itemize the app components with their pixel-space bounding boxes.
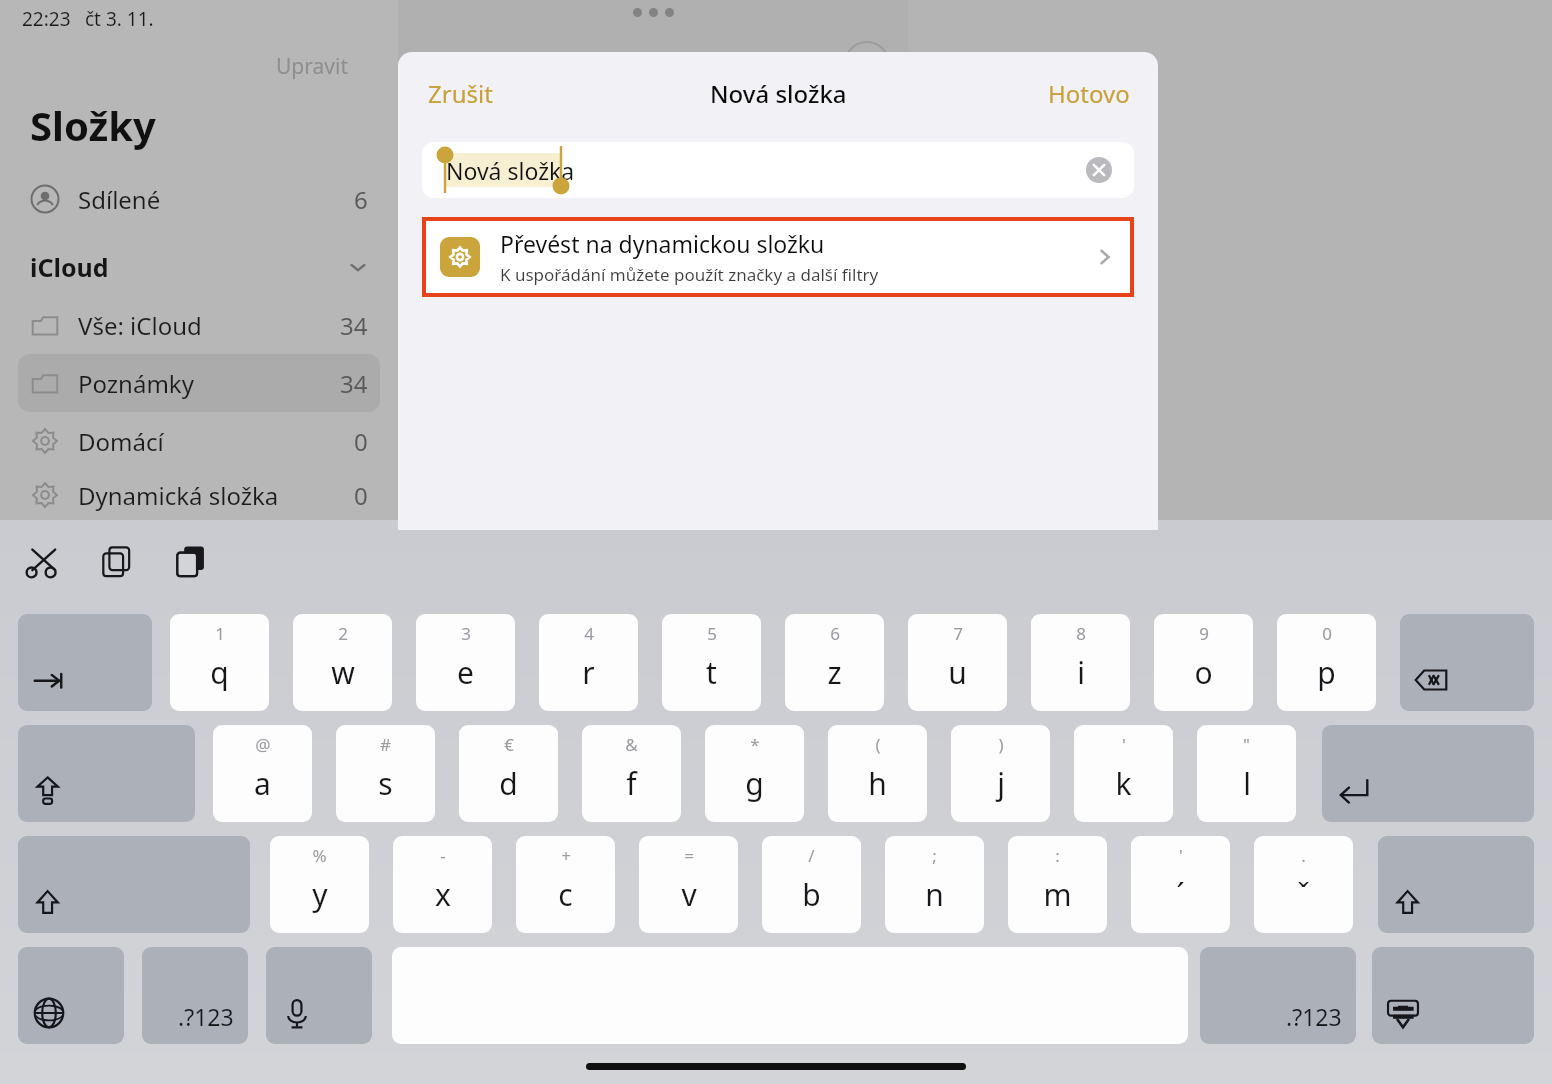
button[interactable]: ) xyxy=(951,725,1050,822)
staticText: iCloud xyxy=(30,250,109,284)
button[interactable]: Upravit xyxy=(276,52,348,81)
button[interactable]: Vše: iCloud xyxy=(18,296,380,354)
staticText: 8 xyxy=(1076,622,1086,645)
staticText: ) xyxy=(998,733,1004,756)
button[interactable]: Key xyxy=(1378,836,1534,933)
button[interactable]: Key xyxy=(18,836,250,933)
button[interactable]: : xyxy=(1008,836,1107,933)
button[interactable]: 4 xyxy=(539,614,638,711)
button[interactable]: / xyxy=(762,836,861,933)
button[interactable]: # xyxy=(336,725,435,822)
staticText: 7 xyxy=(953,622,963,645)
button[interactable]: Key xyxy=(18,725,195,822)
button[interactable]: ; xyxy=(885,836,984,933)
staticText: .?123 xyxy=(1286,1001,1342,1032)
staticText: v xyxy=(681,874,697,915)
button[interactable]: Key xyxy=(266,947,372,1044)
button[interactable]: * xyxy=(705,725,804,822)
staticText: - xyxy=(440,844,446,867)
button[interactable]: € xyxy=(459,725,558,822)
staticText: 34 xyxy=(340,367,368,400)
button[interactable]: Převést na dynamickou složku xyxy=(426,221,1130,293)
button[interactable]: Key xyxy=(1400,614,1534,711)
button[interactable]: 7 xyxy=(908,614,1007,711)
button[interactable]: Paste xyxy=(172,542,210,580)
button[interactable]: 0 xyxy=(1277,614,1376,711)
staticText: s xyxy=(378,763,393,804)
staticText: p xyxy=(1317,652,1336,693)
button[interactable]: @ xyxy=(213,725,312,822)
button[interactable]: Zrušit xyxy=(428,77,493,110)
staticText: Nová složka xyxy=(446,155,575,186)
staticText: 22:23 xyxy=(22,6,71,32)
staticText: a xyxy=(254,763,271,804)
button[interactable]: ' xyxy=(1131,836,1230,933)
button[interactable]: Sdílené xyxy=(18,170,380,228)
button[interactable]: + xyxy=(516,836,615,933)
button[interactable]: 9 xyxy=(1154,614,1253,711)
button[interactable]: Key xyxy=(1322,725,1534,822)
button[interactable]: .?123 xyxy=(1200,947,1356,1044)
button[interactable]: Key xyxy=(18,947,124,1044)
button[interactable]: 1 xyxy=(170,614,269,711)
staticText: ' xyxy=(1122,733,1126,756)
button[interactable]: Domácí xyxy=(18,412,380,470)
button[interactable]: % xyxy=(270,836,369,933)
staticText: Složky xyxy=(30,98,156,152)
button[interactable]: Nová složka xyxy=(422,142,1134,198)
button[interactable]: ' xyxy=(1074,725,1173,822)
button[interactable]: Dynamická složka xyxy=(18,470,380,520)
button[interactable]: 5 xyxy=(662,614,761,711)
staticText: b xyxy=(802,874,821,915)
staticText: = xyxy=(684,844,694,867)
staticText: * xyxy=(750,733,760,756)
staticText: x xyxy=(435,874,451,915)
staticText: u xyxy=(948,652,967,693)
staticText: r xyxy=(582,652,595,693)
staticText: ; xyxy=(932,844,937,867)
button[interactable]: 2 xyxy=(293,614,392,711)
staticText: : xyxy=(1055,844,1060,867)
staticText: . xyxy=(1301,844,1306,867)
button[interactable]: . xyxy=(1254,836,1353,933)
staticText: 9 xyxy=(1199,622,1209,645)
button[interactable]: 3 xyxy=(416,614,515,711)
staticText: h xyxy=(868,763,887,804)
staticText: % xyxy=(312,844,327,867)
staticText: 6 xyxy=(354,183,368,216)
staticText: # xyxy=(380,733,391,756)
staticText: 1 xyxy=(215,622,225,645)
staticText: 5 xyxy=(707,622,717,645)
button[interactable]: .?123 xyxy=(142,947,248,1044)
staticText: q xyxy=(210,652,229,693)
button[interactable]: Copy xyxy=(98,542,136,580)
staticText: ( xyxy=(875,733,881,756)
staticText: m xyxy=(1043,874,1072,915)
button[interactable]: Cut xyxy=(24,542,62,580)
button[interactable]: 6 xyxy=(785,614,884,711)
button[interactable]: 8 xyxy=(1031,614,1130,711)
staticText: K uspořádání můžete použít značky a dalš… xyxy=(500,263,879,286)
staticText: d xyxy=(499,763,518,804)
button[interactable]: " xyxy=(1197,725,1296,822)
staticText: 0 xyxy=(1322,622,1332,645)
staticText: n xyxy=(925,874,944,915)
staticText: i xyxy=(1077,652,1085,693)
button[interactable]: Key xyxy=(18,614,152,711)
staticText: + xyxy=(561,844,571,867)
button[interactable]: - xyxy=(393,836,492,933)
button[interactable]: Clear text xyxy=(1086,157,1112,183)
button[interactable]: Poznámky xyxy=(18,354,380,412)
button[interactable]: iCloud xyxy=(30,250,368,284)
staticText: e xyxy=(457,652,474,693)
button[interactable]: Hotovo xyxy=(1048,77,1130,110)
button[interactable]: ( xyxy=(828,725,927,822)
staticText: 4 xyxy=(584,622,594,645)
staticText: @ xyxy=(255,733,271,756)
staticText: Dynamická složka xyxy=(78,479,279,512)
button[interactable]: Key xyxy=(1372,947,1534,1044)
staticText: 34 xyxy=(340,309,368,342)
button[interactable]: & xyxy=(582,725,681,822)
button[interactable]: = xyxy=(639,836,738,933)
